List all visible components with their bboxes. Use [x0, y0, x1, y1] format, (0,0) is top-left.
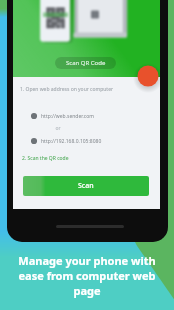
button[interactable]: Scan QR Code [55, 57, 116, 69]
button[interactable]: http://web.sender.com [30, 111, 94, 121]
staticText: http://192.168.0.105:8080 [41, 138, 102, 145]
staticText: 1. Open web address on your computer [20, 86, 114, 93]
staticText: or [55, 125, 61, 132]
staticText: http://web.sender.com [41, 113, 94, 120]
staticText: Scan QR Code [66, 59, 106, 67]
staticText: Manage your phone with ease from compute… [8, 253, 166, 298]
button[interactable]: Scan [23, 176, 149, 196]
button[interactable]: Scan QR code [132, 60, 164, 92]
staticText: 2. Scan the QR code [22, 155, 69, 162]
button[interactable]: http://192.168.0.105:8080 [30, 136, 102, 146]
staticText: Scan [78, 181, 94, 191]
